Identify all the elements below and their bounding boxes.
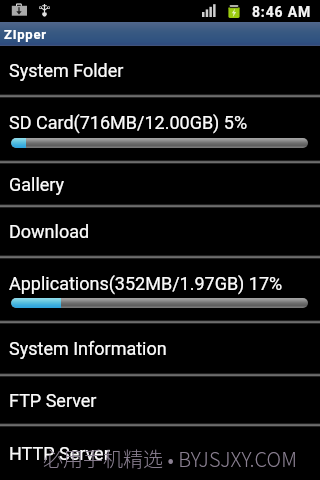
staticText: 8:46 AM (252, 4, 312, 20)
other: Download complete (11, 3, 28, 18)
staticText: SD Card(716MB/12.00GB) 5% (9, 112, 248, 133)
staticText: Gallery (9, 174, 65, 195)
staticText: Applications(352MB/1.97GB) 17% (9, 273, 283, 294)
other: Battery charging (228, 5, 240, 18)
button[interactable]: Gallery (0, 164, 320, 204)
button[interactable]: System Information (0, 324, 320, 373)
staticText: System Information (9, 338, 167, 359)
button[interactable]: Applications(352MB/1.97GB) 17% (0, 259, 320, 320)
button[interactable]: FTP Server (0, 377, 320, 423)
staticText: System Folder (9, 60, 124, 81)
staticText: 必用手机精选 • BYJSJXY.COM (43, 444, 297, 473)
button[interactable]: System Folder (0, 46, 320, 94)
other: Signal strength (201, 4, 217, 18)
button[interactable]: HTTP Server (0, 427, 320, 480)
staticText: ZIpper (4, 27, 47, 42)
button[interactable]: SD Card(716MB/12.00GB) 5% (0, 98, 320, 160)
other: USB connected (38, 3, 51, 19)
staticText: HTTP Server (9, 443, 110, 464)
staticText: Download (9, 221, 90, 242)
button[interactable]: Download (0, 208, 320, 255)
staticText: FTP Server (9, 390, 97, 411)
